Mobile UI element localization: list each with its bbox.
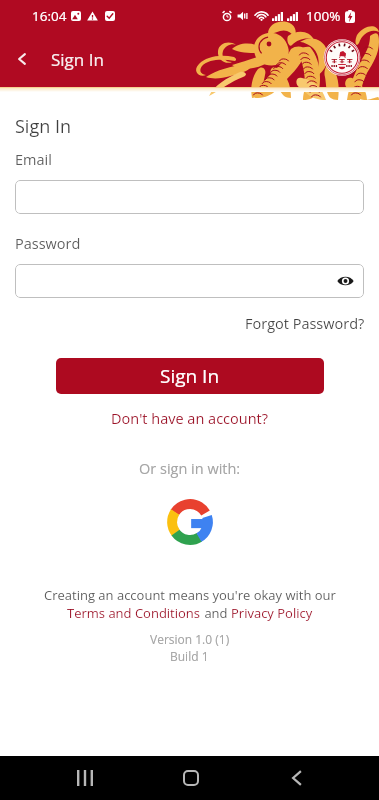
button[interactable]: Home <box>168 756 213 800</box>
button[interactable] <box>15 180 364 214</box>
staticText: Sign In <box>51 48 104 71</box>
button[interactable]: Back <box>274 756 319 800</box>
staticText: Email <box>15 150 52 170</box>
button[interactable]: Terms and Conditions <box>67 604 201 622</box>
button[interactable]: Sign In <box>56 358 324 394</box>
button[interactable] <box>15 264 364 298</box>
staticText: Don't have an account? <box>111 409 268 429</box>
staticText: Password <box>15 234 81 254</box>
staticText: Privacy Policy <box>231 604 313 622</box>
button[interactable]: Privacy Policy <box>231 604 313 622</box>
staticText: Terms and Conditions <box>67 604 201 622</box>
staticText: Build 1 <box>170 648 209 664</box>
button[interactable]: Show password <box>333 269 357 293</box>
staticText: 100% <box>306 7 341 25</box>
staticText: Creating an account means you're okay wi… <box>44 586 336 604</box>
button[interactable]: Sign in with Google <box>166 498 214 546</box>
button[interactable]: Don't have an account? <box>111 409 268 429</box>
staticText: Version 1.0 (1) <box>150 631 230 647</box>
staticText: Forgot Password? <box>245 314 365 334</box>
staticText: Sign In <box>160 363 220 389</box>
staticText: 16:04 <box>32 7 67 25</box>
staticText: Sign In <box>15 114 71 139</box>
button[interactable]: Back <box>4 41 40 77</box>
staticText: and <box>201 604 231 622</box>
button[interactable]: Recent apps <box>62 756 107 800</box>
button[interactable]: Forgot Password? <box>245 314 365 334</box>
staticText: Or sign in with: <box>139 459 241 479</box>
